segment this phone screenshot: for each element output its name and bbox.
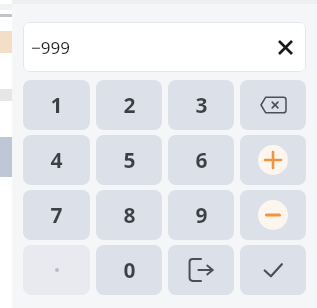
button[interactable]: 0 [96,245,162,295]
button[interactable]: 5 [96,135,162,185]
button[interactable]: Clear [272,34,298,60]
button[interactable]: 9 [168,190,234,240]
staticText: 0 [123,256,136,285]
button[interactable]: 1 [23,80,90,130]
staticText: 2 [123,91,136,120]
staticText: 7 [50,201,63,230]
staticText: 6 [195,146,208,175]
staticText: 8 [123,201,136,230]
button[interactable]: 6 [168,135,234,185]
staticText: 9 [195,201,208,230]
button[interactable]: 2 [96,80,162,130]
button[interactable]: Confirm [240,245,306,295]
staticText: 3 [195,91,208,120]
staticText: 4 [50,146,63,175]
button[interactable]: Decimal point [23,245,90,295]
staticText: 5 [123,146,136,175]
button[interactable]: Submit and exit [168,245,234,295]
staticText: 1 [50,91,63,120]
staticText: −999 [31,36,70,59]
button[interactable]: 7 [23,190,90,240]
button[interactable]: Backspace [240,80,306,130]
button[interactable]: 3 [168,80,234,130]
button[interactable]: 4 [23,135,90,185]
button[interactable]: Subtract [240,190,306,240]
button[interactable]: 8 [96,190,162,240]
button[interactable]: Add [240,135,306,185]
button[interactable]: −999 [23,22,306,72]
